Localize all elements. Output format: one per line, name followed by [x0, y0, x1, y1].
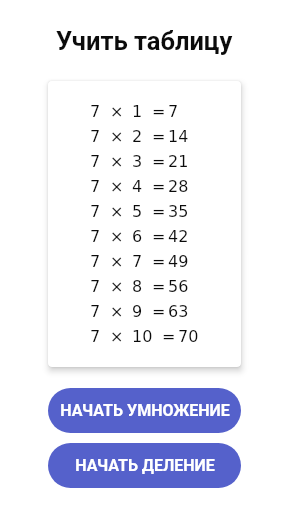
staticText: ×: [110, 102, 124, 121]
staticText: ×: [110, 277, 124, 296]
staticText: 70: [178, 327, 199, 346]
staticText: 9: [132, 302, 143, 321]
staticText: =: [152, 152, 166, 171]
staticText: 49: [168, 252, 189, 271]
staticText: 7: [168, 102, 179, 121]
button[interactable]: НАЧАТЬ УМНОЖЕНИЕ: [48, 388, 241, 433]
staticText: =: [152, 127, 166, 146]
staticText: ×: [110, 152, 124, 171]
staticText: =: [152, 102, 166, 121]
staticText: =: [152, 302, 166, 321]
staticText: 7: [90, 327, 101, 346]
staticText: 7: [90, 127, 101, 146]
staticText: ×: [110, 177, 124, 196]
staticText: 2: [132, 127, 143, 146]
staticText: Учить таблицу: [56, 26, 233, 56]
staticText: 7: [90, 227, 101, 246]
staticText: 3: [132, 152, 143, 171]
staticText: ×: [110, 327, 124, 346]
staticText: =: [152, 202, 166, 221]
staticText: =: [162, 327, 176, 346]
staticText: 7: [90, 302, 101, 321]
staticText: 35: [168, 202, 189, 221]
staticText: 7: [90, 177, 101, 196]
staticText: 56: [168, 277, 189, 296]
staticText: 7: [90, 252, 101, 271]
staticText: 7: [90, 277, 101, 296]
staticText: ×: [110, 127, 124, 146]
staticText: 21: [168, 152, 189, 171]
staticText: =: [152, 227, 166, 246]
staticText: ×: [110, 252, 124, 271]
staticText: 7: [90, 102, 101, 121]
staticText: =: [152, 177, 166, 196]
staticText: =: [152, 277, 166, 296]
staticText: 5: [132, 202, 143, 221]
staticText: 28: [168, 177, 189, 196]
staticText: 7: [132, 252, 143, 271]
staticText: ×: [110, 302, 124, 321]
staticText: 10: [132, 327, 153, 346]
staticText: 42: [168, 227, 189, 246]
staticText: 14: [168, 127, 189, 146]
staticText: 8: [132, 277, 143, 296]
staticText: 63: [168, 302, 189, 321]
staticText: 7: [90, 202, 101, 221]
staticText: НАЧАТЬ ДЕЛЕНИЕ: [75, 456, 215, 475]
staticText: 4: [132, 177, 143, 196]
button[interactable]: НАЧАТЬ ДЕЛЕНИЕ: [48, 443, 241, 488]
staticText: 7: [90, 152, 101, 171]
staticText: НАЧАТЬ УМНОЖЕНИЕ: [60, 401, 230, 420]
staticText: =: [152, 252, 166, 271]
staticText: ×: [110, 227, 124, 246]
staticText: 1: [132, 102, 143, 121]
staticText: ×: [110, 202, 124, 221]
staticText: 6: [132, 227, 143, 246]
